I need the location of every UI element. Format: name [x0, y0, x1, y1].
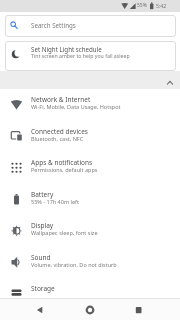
button[interactable] [28, 299, 52, 320]
button[interactable]: Sound [0, 247, 180, 279]
staticText: Permissions, default apps [31, 166, 98, 173]
staticText: Sound [31, 253, 51, 262]
staticText: Battery [31, 190, 54, 199]
button[interactable]: Display [0, 215, 180, 247]
staticText: Bluetooth, cast, NFC [31, 135, 84, 142]
staticText: 55% [137, 2, 147, 9]
button[interactable]: Network & Internet [0, 89, 180, 121]
button[interactable]: Connected devices [0, 121, 180, 153]
button[interactable] [78, 299, 102, 320]
button[interactable]: Battery [0, 184, 180, 216]
staticText: Tint screen amber to help you fall aslee… [31, 52, 130, 59]
staticText: 5:42 [156, 2, 167, 9]
staticText: Wallpaper, sleep, font size [31, 229, 98, 236]
staticText: Storage [31, 284, 55, 293]
staticText: Display [31, 221, 54, 230]
staticText: Volume, vibration, Do not disturb [31, 261, 117, 268]
button[interactable] [126, 299, 150, 320]
button[interactable]: Apps & notifications [0, 152, 180, 184]
staticText: Set Night Light schedule [31, 45, 102, 53]
staticText: Apps & notifications [31, 158, 93, 167]
button[interactable]: Search Settings [5, 15, 176, 37]
staticText: Search Settings [31, 21, 76, 29]
staticText: Connected devices [31, 127, 88, 136]
staticText: Network & Internet [31, 95, 91, 104]
button[interactable]: Set Night Light schedule [5, 41, 176, 71]
button[interactable] [0, 71, 180, 89]
button[interactable]: Storage [0, 278, 180, 310]
staticText: Wi-Fi, Mobile, Data Usage, Hotspot [31, 103, 121, 110]
staticText: 55% - 17h 40m left [31, 198, 79, 205]
